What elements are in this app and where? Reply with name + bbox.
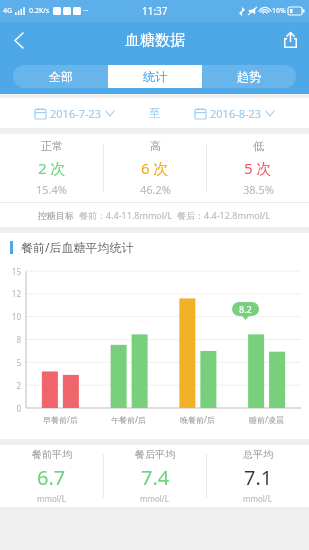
staticText: 7.1 [244,464,273,491]
staticText: 睡前/凌晨 [249,414,284,425]
staticText: 2016-7-23 [50,106,102,121]
staticText: 餐前：4.4-11.8mmol/L [79,209,173,221]
staticText: 7.4 [141,464,170,491]
button[interactable]: 正常 [0,134,103,202]
staticText: 全部 [49,69,73,84]
button[interactable]: Back [0,22,38,58]
staticText: 早餐前/后 [43,414,78,425]
staticText: 15.4% [36,182,67,197]
staticText: 总平均 [243,448,273,461]
staticText: 2016-8-23 [210,106,262,121]
button[interactable]: 全部 [13,65,108,88]
staticText: 餐后：4.4-12.8mmol/L [177,209,271,221]
staticText: 5 次 [244,158,272,178]
staticText: 8 [2,334,21,345]
staticText: 2 [2,380,21,391]
button[interactable]: 低 [207,134,309,202]
staticText: 16% [272,6,286,16]
button[interactable]: Share [271,22,309,58]
staticText: 6 次 [141,158,169,178]
button[interactable]: 高 [104,134,206,202]
staticText: 正常 [41,139,63,153]
staticText: 低 [253,139,264,153]
staticText: 餐前/后血糖平均统计 [21,239,134,255]
button[interactable]: 餐后平均 [104,445,206,507]
staticText: 15 [2,266,21,277]
staticText: mmol/L [140,493,170,504]
staticText: 餐前平均 [32,448,72,461]
staticText: 0 [2,403,21,414]
button[interactable]: 趋势 [202,65,296,88]
staticText: 血糖数据 [125,31,185,50]
button[interactable]: 统计 [108,65,202,88]
staticText: 11:37 [142,4,168,18]
staticText: 46.2% [140,182,171,197]
staticText: ··· [83,6,89,16]
staticText: 38.5% [243,182,274,197]
staticText: 8.2 [239,303,252,315]
staticText: 趋势 [237,69,261,84]
staticText: 10 [2,311,21,322]
button[interactable]: 2016-7-23 [0,98,149,128]
staticText: mmol/L [37,493,67,504]
staticText: mmol/L [243,493,273,504]
button[interactable]: 餐前平均 [0,445,103,507]
button[interactable]: 总平均 [207,445,309,507]
staticText: 控糖目标 [38,210,74,221]
staticText: 0.2K/s [29,6,50,16]
staticText: 统计 [143,69,167,84]
staticText: 至 [149,106,160,120]
staticText: 晚餐前/后 [180,414,215,425]
staticText: 6.7 [37,464,66,491]
staticText: 餐后平均 [135,448,175,461]
staticText: 12 [2,288,21,299]
staticText: 2 次 [38,158,66,178]
staticText: 午餐前/后 [111,414,146,425]
staticText: 高 [150,139,161,153]
staticText: 4G [3,6,13,16]
button[interactable]: 2016-8-23 [160,98,309,128]
staticText: 5 [2,357,21,368]
